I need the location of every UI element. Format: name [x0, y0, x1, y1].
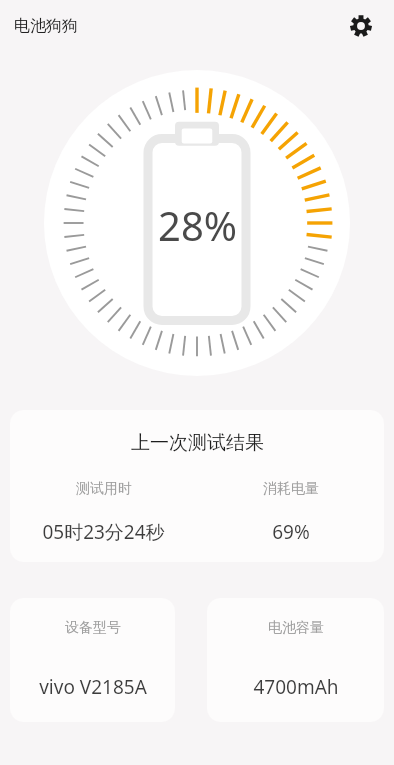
staticText: 4700mAh [253, 674, 339, 700]
staticText: 测试用时 [76, 480, 132, 498]
staticText: 消耗电量 [263, 480, 319, 498]
button[interactable]: 设备型号 [10, 598, 175, 722]
button[interactable]: 上一次测试结果 [10, 410, 384, 562]
staticText: 05时23分24秒 [42, 519, 165, 545]
staticText: 电池狗狗 [14, 16, 78, 36]
button[interactable]: 电池狗狗 [14, 16, 78, 36]
staticText: vivo V2185A [39, 674, 147, 700]
staticText: 上一次测试结果 [131, 431, 264, 455]
button[interactable]: 电池容量 [207, 598, 384, 722]
button[interactable]: Settings [346, 11, 376, 41]
staticText: 电池容量 [268, 619, 324, 637]
staticText: 69% [272, 519, 310, 545]
staticText: 28% [158, 198, 237, 252]
staticText: 设备型号 [65, 619, 121, 637]
